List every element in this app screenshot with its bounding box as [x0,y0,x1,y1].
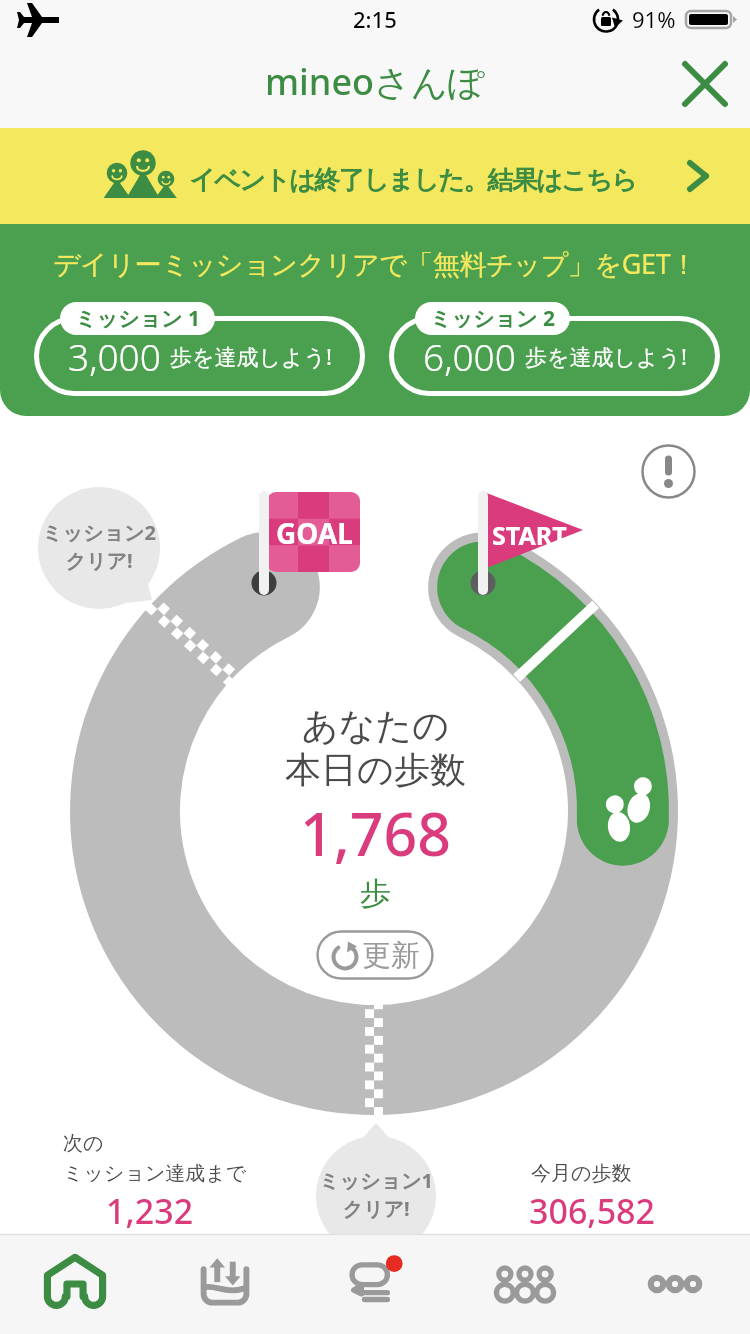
button[interactable]: Close [674,53,736,115]
staticText: 歩 [360,874,391,913]
button[interactable]: Data usage [150,1234,300,1334]
staticText: 歩を達成しよう! [525,341,687,371]
button[interactable]: 更新 [316,930,434,980]
staticText: 次の ミッション達成まで [63,1131,247,1186]
button[interactable]: Home [0,1234,150,1334]
staticText: 6,000 [423,331,516,381]
staticText: START [492,518,567,552]
staticText: ミッション 2 [430,304,555,333]
staticText: 歩を達成しよう! [170,341,332,371]
button[interactable]: More [600,1234,750,1334]
staticText: ミッション 1 [75,304,200,333]
button[interactable]: イベントは終了しました。結果はこちら [0,128,750,224]
staticText: 306,582 [529,1188,655,1234]
staticText: ミッション2 クリア! [42,519,156,574]
staticText: 1,768 [300,793,452,873]
staticText: ミッション1 クリア! [319,1167,433,1222]
staticText: mineoさんぽ [265,57,485,106]
button[interactable]: 3,000 [34,302,365,396]
staticText: イベントは終了しました。結果はこちら [189,164,637,197]
staticText: 91% [632,4,676,34]
button[interactable]: Messages [300,1234,450,1334]
button[interactable]: Information [641,444,696,499]
staticText: 更新 [362,937,420,974]
button[interactable]: Community [450,1234,600,1334]
staticText: 2:15 [353,4,397,34]
staticText: あなたの 本日の歩数 [285,703,466,793]
staticText: 1,232 [106,1188,194,1234]
staticText: GOAL [276,514,353,552]
staticText: 3,000 [68,331,161,381]
button[interactable]: 6,000 [389,302,720,396]
staticText: 今月の歩数 [531,1161,632,1186]
staticText: デイリーミッションクリアで「無料チップ」をGET！ [0,245,750,282]
